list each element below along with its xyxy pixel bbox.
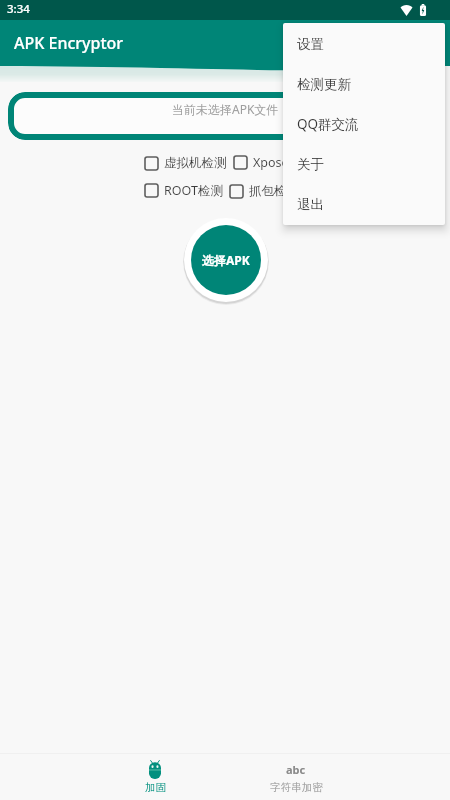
button[interactable]: Xposed检测	[233, 154, 322, 171]
staticText: 退出	[297, 196, 324, 213]
staticText: 关于	[297, 156, 324, 173]
button[interactable]: 选择APK	[191, 225, 261, 295]
staticText: 3:34	[7, 1, 30, 17]
button[interactable]: 检测更新	[283, 65, 445, 105]
button[interactable]: 虚拟机检测	[144, 155, 227, 171]
staticText: APK Encryptor	[14, 32, 124, 54]
staticText: 虚拟机检测	[164, 155, 227, 171]
staticText: QQ群交流	[297, 115, 359, 133]
staticText: Xposed检测	[253, 154, 322, 171]
button[interactable]: 退出	[283, 185, 445, 225]
staticText: 抓包检测	[249, 183, 299, 199]
staticText: 字符串加密	[270, 781, 323, 794]
button[interactable]: QQ群交流	[283, 105, 445, 145]
button[interactable]: abc	[260, 760, 332, 794]
button[interactable]: 关于	[283, 145, 445, 185]
button[interactable]: 加固	[119, 760, 191, 794]
staticText: ROOT检测	[164, 182, 223, 199]
button[interactable]: 抓包检测	[229, 183, 299, 199]
staticText: 选择APK	[202, 252, 250, 268]
staticText: 检测更新	[297, 76, 351, 93]
staticText: 设置	[297, 36, 324, 53]
button[interactable]: 当前未选择APK文件	[8, 92, 442, 140]
button[interactable]: More options	[404, 20, 450, 66]
staticText: 当前未选择APK文件	[172, 101, 279, 117]
button[interactable]: 设置	[283, 25, 445, 65]
staticText: 加固	[145, 781, 166, 794]
staticText: abc	[286, 762, 306, 777]
button[interactable]: ROOT检测	[144, 182, 223, 199]
